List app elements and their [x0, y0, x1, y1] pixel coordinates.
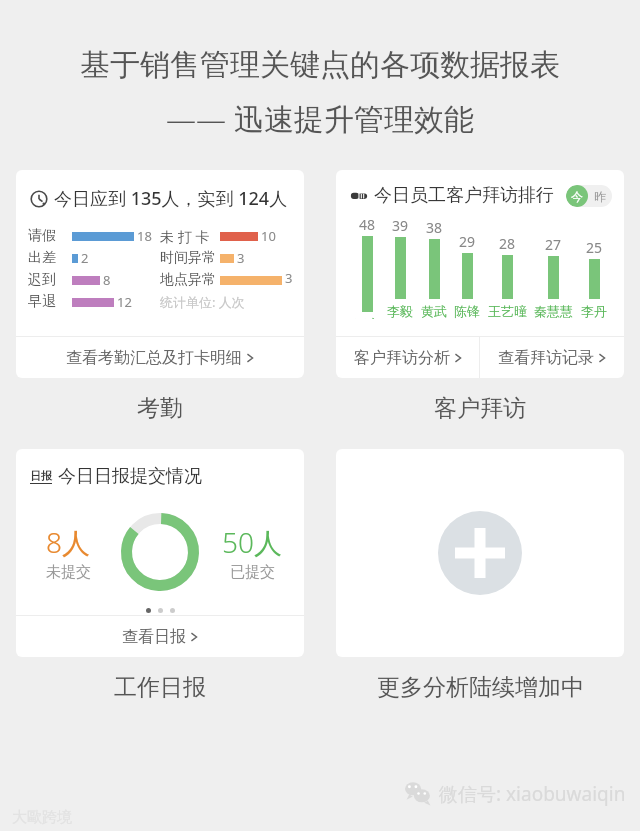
staticText: 27 — [545, 235, 562, 254]
staticText: 12 — [117, 293, 132, 311]
button[interactable]: 查看日报 — [16, 616, 304, 657]
staticText: 李丹 — [581, 303, 607, 319]
button[interactable]: 查看拜访记录 — [480, 337, 624, 378]
staticText: 秦慧慧 — [534, 303, 573, 319]
staticText: 28 — [499, 234, 516, 253]
staticText: 陈锋 — [454, 303, 480, 319]
staticText: 29 — [459, 232, 476, 251]
staticText: 工作日报 — [114, 673, 206, 702]
staticText: 王艺曈 — [488, 303, 527, 319]
button[interactable]: 今日应到 135人，实到 124人 — [16, 170, 304, 378]
staticText: 3 — [237, 249, 245, 267]
staticText: 请假 — [28, 227, 56, 245]
staticText: 38 — [426, 218, 443, 237]
button[interactable]: 今日员工客户拜访排行 — [336, 170, 624, 378]
staticText: 今 — [571, 189, 583, 204]
staticText: 今日日报提交情况 — [58, 465, 202, 488]
button[interactable]: 日报 — [16, 449, 304, 657]
staticText: 李毅 — [387, 303, 413, 319]
button[interactable]: 客户拜访分析 — [336, 337, 479, 378]
staticText: 48 — [359, 215, 376, 234]
staticText: 早退 — [28, 293, 56, 311]
staticText: 大歐跨境 — [12, 808, 72, 827]
staticText: 未提交 — [46, 563, 91, 582]
staticText: 统计单位: 人次 — [160, 293, 245, 311]
staticText: 今日员工客户拜访排行 — [374, 184, 554, 207]
staticText: 8 — [103, 271, 111, 289]
staticText: 未 打 卡 — [160, 227, 210, 246]
staticText: 基于销售管理关键点的各项数据报表 — [0, 46, 640, 84]
staticText: 时间异常 — [160, 249, 216, 267]
staticText: 出差 — [28, 249, 56, 267]
button[interactable]: Add more analytics — [336, 449, 624, 657]
staticText: 已提交 — [230, 563, 275, 582]
staticText: 考勤 — [137, 394, 183, 423]
staticText: —— 迅速提升管理效能 — [0, 98, 640, 139]
staticText: 50人 — [222, 523, 282, 561]
staticText: 客户拜访 — [434, 394, 526, 423]
staticText: 黄武 — [421, 303, 447, 319]
staticText: 18 — [137, 227, 152, 245]
staticText: 日报 — [30, 469, 52, 483]
button[interactable]: 查看考勤汇总及打卡明细 — [16, 337, 304, 378]
staticText: 今日应到 135人，实到 124人 — [54, 186, 288, 211]
staticText: 8人 — [46, 523, 90, 561]
staticText: 客户拜访分析 — [354, 348, 450, 368]
staticText: 10 — [261, 227, 276, 245]
staticText: 30 — [285, 269, 292, 291]
staticText: 查看拜访记录 — [498, 348, 594, 368]
staticText: 微信号: xiaobuwaiqin — [439, 781, 626, 807]
staticText: 查看考勤汇总及打卡明细 — [66, 348, 242, 368]
staticText: 地点异常 — [160, 271, 216, 289]
staticText: 昨 — [594, 189, 606, 204]
staticText: 2 — [81, 249, 89, 267]
staticText: 王宏 — [354, 316, 380, 319]
button[interactable]: 今 — [566, 185, 612, 207]
staticText: 查看日报 — [122, 627, 186, 647]
staticText: 迟到 — [28, 271, 56, 289]
staticText: 25 — [586, 238, 603, 257]
staticText: 更多分析陆续增加中 — [377, 673, 584, 702]
staticText: 39 — [392, 216, 409, 235]
